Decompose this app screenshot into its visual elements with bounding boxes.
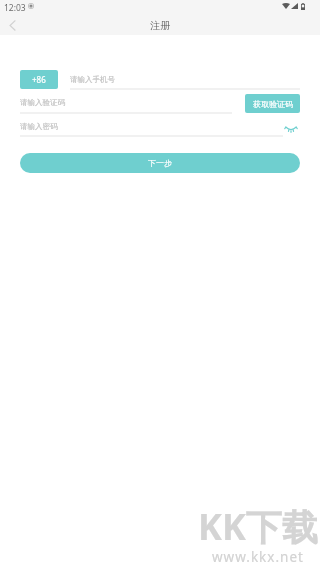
button[interactable]: +86 [20, 70, 58, 89]
staticText: 12:03 [4, 2, 26, 14]
staticText: 请输入密码 [20, 122, 58, 131]
button[interactable]: 请输入密码 [20, 117, 270, 135]
button[interactable]: 下一步 [20, 153, 300, 173]
staticText: +86 [32, 74, 46, 85]
staticText: 下一步 [148, 158, 172, 168]
button[interactable]: Show password [282, 120, 300, 137]
button[interactable]: 请输入验证码 [20, 93, 220, 111]
staticText: 注册 [150, 19, 170, 32]
staticText: 获取验证码 [253, 99, 293, 109]
staticText: KK下载 [198, 502, 318, 551]
staticText: 请输入手机号 [70, 75, 115, 84]
staticText: www.kkx.net [212, 548, 304, 566]
button[interactable]: 获取验证码 [245, 94, 300, 113]
button[interactable]: 请输入手机号 [70, 70, 300, 88]
staticText: 请输入验证码 [20, 98, 65, 107]
button[interactable]: Back [0, 15, 24, 35]
